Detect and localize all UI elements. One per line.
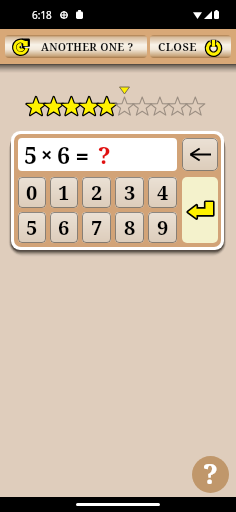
button[interactable]: 9 [148, 212, 177, 243]
staticText: CLOSE [158, 39, 197, 54]
button[interactable]: 8 [115, 212, 144, 243]
staticText: 2 [91, 179, 103, 206]
button[interactable]: ANOTHER ONE ? [5, 35, 147, 58]
button[interactable]: 0 [18, 177, 46, 208]
staticText: 8 [124, 214, 136, 241]
button[interactable]: 7 [82, 212, 111, 243]
button[interactable]: 1 [50, 177, 78, 208]
staticText: 4 [157, 179, 169, 206]
staticText: 6 [57, 139, 70, 170]
staticText: 5 [26, 214, 38, 241]
staticText: × [41, 141, 53, 168]
button[interactable]: 5 [18, 212, 46, 243]
button[interactable]: Backspace [182, 138, 218, 171]
button[interactable]: CLOSE [150, 35, 231, 58]
button[interactable]: 2 [82, 177, 111, 208]
staticText: = [76, 140, 89, 170]
staticText: ? [98, 139, 111, 170]
staticText: ? [203, 456, 218, 492]
staticText: ANOTHER ONE ? [41, 40, 134, 54]
staticText: 3 [124, 179, 136, 206]
staticText: 1 [58, 179, 70, 206]
staticText: 6 [58, 214, 70, 241]
staticText: 0 [26, 179, 38, 206]
staticText: 5 [24, 139, 37, 170]
button[interactable]: Help [192, 456, 229, 493]
button[interactable]: 6 [50, 212, 78, 243]
staticText: 9 [157, 214, 169, 241]
button[interactable]: 4 [148, 177, 177, 208]
button[interactable]: Enter [182, 177, 218, 243]
staticText: 6:18 [32, 8, 52, 22]
staticText: 7 [91, 214, 103, 241]
button[interactable]: 3 [115, 177, 144, 208]
